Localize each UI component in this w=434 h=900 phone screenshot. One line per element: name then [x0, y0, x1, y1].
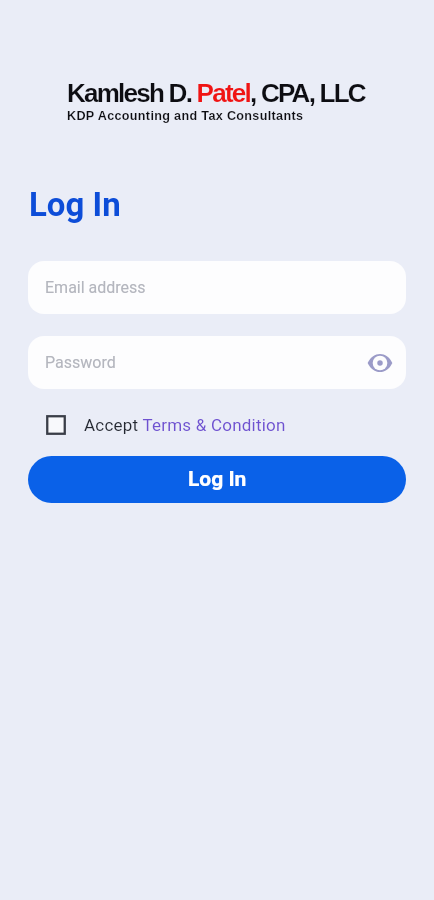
button[interactable]: Email address: [28, 261, 406, 314]
button[interactable]: Show password: [362, 345, 398, 381]
button[interactable]: Log In: [28, 456, 406, 503]
staticText: Log In: [29, 185, 121, 224]
button[interactable]: Accept Terms & Condition: [84, 415, 286, 435]
button[interactable]: Accept terms and conditions: [46, 415, 66, 435]
staticText: Kamlesh D. Patel, CPA, LLC: [67, 78, 365, 107]
staticText: Password: [45, 353, 116, 372]
staticText: Email address: [45, 278, 146, 297]
button[interactable]: Password: [28, 336, 406, 389]
staticText: Log In: [188, 467, 247, 492]
staticText: KDP Accounting and Tax Consultants: [67, 109, 304, 123]
